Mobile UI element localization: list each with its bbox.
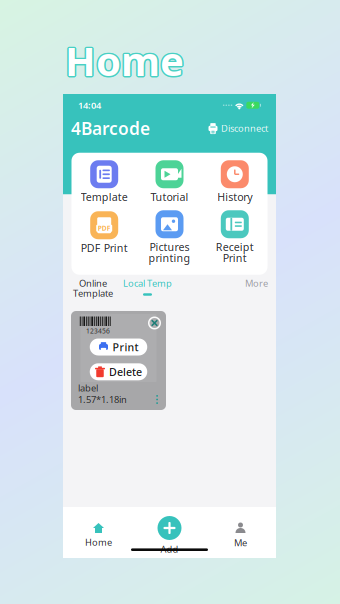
staticText: Local Temp	[123, 277, 172, 289]
staticText: Me	[234, 536, 247, 549]
button[interactable]: Close	[148, 316, 161, 329]
staticText: Home	[65, 33, 184, 86]
staticText: Add	[160, 543, 178, 555]
button[interactable]: Pictures	[137, 211, 202, 262]
button[interactable]: More	[245, 278, 268, 288]
staticText: 123456	[86, 327, 110, 335]
staticText: Home	[65, 35, 184, 88]
button[interactable]: PDF	[72, 211, 137, 262]
button[interactable]: Disconnect	[208, 122, 268, 134]
button[interactable]: Delete	[90, 363, 147, 380]
staticText: printing	[148, 251, 190, 265]
button[interactable]: Receipt	[202, 211, 267, 262]
staticText: Disconnect	[221, 122, 268, 134]
button[interactable]: Template	[72, 160, 137, 211]
button[interactable]: Home	[63, 523, 134, 548]
staticText: Template	[81, 190, 128, 204]
staticText: 1.57*1.18in	[78, 393, 127, 406]
staticText: Template	[73, 287, 113, 299]
staticText: Print	[223, 251, 247, 265]
staticText: More	[245, 277, 268, 289]
button[interactable]: Tutorial	[137, 160, 202, 211]
button[interactable]: Online	[72, 278, 114, 298]
staticText: Tutorial	[150, 190, 188, 204]
staticText: PDF	[98, 224, 111, 233]
staticText: Home	[66, 35, 185, 88]
staticText: Online	[79, 277, 107, 289]
staticText: Home	[66, 34, 185, 87]
staticText: Home	[65, 34, 184, 87]
staticText: Home	[85, 536, 112, 548]
staticText: Print	[112, 340, 138, 354]
staticText: label	[78, 382, 98, 394]
staticText: PDF Print	[81, 241, 128, 255]
staticText: 14:04	[78, 99, 101, 111]
button[interactable]: Add	[134, 516, 205, 555]
staticText: Pictures	[149, 240, 189, 254]
button[interactable]: Me	[205, 522, 276, 549]
button[interactable]: More options	[153, 393, 161, 406]
staticText: 4Barcode	[71, 117, 150, 140]
staticText: Receipt	[216, 240, 254, 254]
staticText: Delete	[109, 365, 142, 379]
staticText: Home	[64, 34, 183, 87]
staticText: Home	[64, 35, 183, 88]
button[interactable]: Local Temp	[114, 278, 172, 296]
staticText: Home	[64, 33, 183, 86]
button[interactable]: History	[202, 160, 267, 211]
button[interactable]: Print	[90, 338, 147, 355]
staticText: Home	[66, 33, 185, 86]
staticText: History	[217, 190, 252, 204]
